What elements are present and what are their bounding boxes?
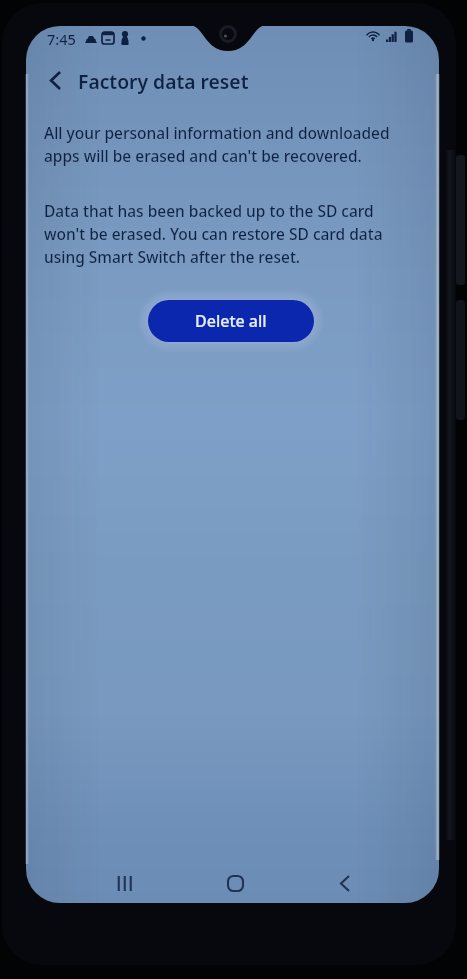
button[interactable]: Back xyxy=(319,862,371,903)
button[interactable]: Delete all xyxy=(148,300,314,342)
staticText: 7:45 xyxy=(47,29,76,49)
staticText: Factory data reset xyxy=(78,68,249,94)
button[interactable]: Home xyxy=(209,862,261,903)
staticText: All your personal information and downlo… xyxy=(44,122,392,167)
staticText: Delete all xyxy=(195,310,267,332)
button[interactable]: Recents xyxy=(98,862,150,903)
staticText: Data that has been backed up to the SD c… xyxy=(44,200,392,268)
button[interactable]: Navigate up xyxy=(38,64,72,96)
